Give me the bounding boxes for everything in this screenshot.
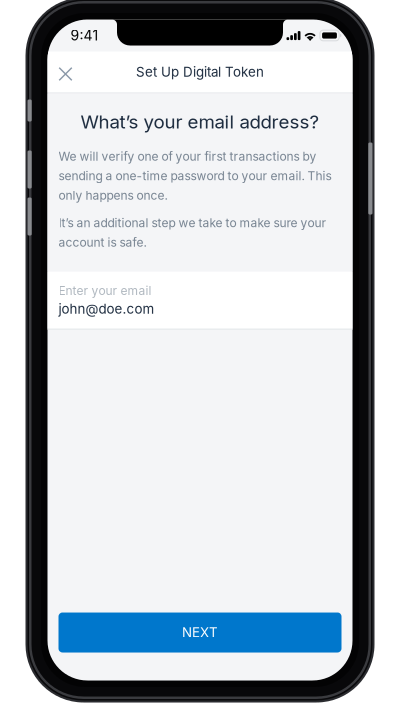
staticText: Set Up Digital Token [136,64,264,80]
staticText: What’s your email address? [80,110,319,133]
staticText: NEXT [182,624,218,640]
button[interactable]: Close [47,51,85,92]
button[interactable]: NEXT [58,612,341,652]
staticText: 9:41 [70,27,98,44]
staticText: Enter your email [58,283,151,298]
button[interactable]: Enter your email [47,272,352,329]
staticText: It’s an additional step we take to make … [58,216,326,250]
staticText: We will verify one of your first transac… [58,149,331,203]
staticText: john@doe.com [58,301,154,317]
